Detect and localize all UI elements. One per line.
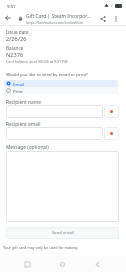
- staticText: Balance: [6, 45, 24, 51]
- staticText: 2/26/26: [6, 35, 27, 43]
- button[interactable]: Share: [97, 13, 108, 24]
- button[interactable]: Home: [55, 257, 69, 271]
- staticText: Print: [13, 88, 23, 94]
- button[interactable]: More options: [110, 13, 121, 24]
- staticText: Card balance as of 3/6/26 at 9:51 PM: [6, 59, 68, 64]
- staticText: /: [111, 3, 113, 8]
- staticText: Email: [13, 81, 25, 87]
- staticText: Send email: [52, 230, 74, 236]
- button[interactable]: [6, 127, 103, 140]
- button[interactable]: Site information: [15, 13, 25, 23]
- staticText: Gift Card | Steam Incorpor...: [26, 13, 91, 20]
- staticText: Your gift card may only be used for maki…: [3, 245, 78, 250]
- button[interactable]: Recents: [20, 257, 34, 271]
- button[interactable]: Send email: [6, 227, 119, 239]
- button[interactable]: [6, 151, 119, 222]
- button[interactable]: Email: [4, 80, 118, 87]
- staticText: Would you like to send by email or print…: [6, 71, 88, 77]
- staticText: Recipient email: [6, 121, 41, 128]
- staticText: Issue date: [6, 29, 29, 35]
- staticText: 9:51: [7, 3, 16, 9]
- staticText: Message (optional): [6, 144, 49, 151]
- button[interactable]: Back: [2, 12, 14, 24]
- staticText: https://fanmarket.com/embed/site: [26, 20, 84, 25]
- button[interactable]: Print: [4, 87, 118, 94]
- staticText: N2376: [6, 51, 24, 59]
- button[interactable]: [6, 105, 103, 118]
- staticText: Recipient name: [6, 99, 41, 106]
- button[interactable]: Back: [90, 257, 104, 271]
